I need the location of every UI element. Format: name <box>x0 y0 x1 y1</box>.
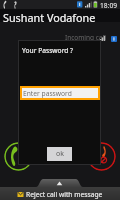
staticText: Enter password <box>23 89 72 98</box>
staticText: Your Password ? <box>22 46 74 55</box>
staticText: Reject call with message <box>26 190 103 199</box>
button[interactable]: Answer call <box>4 142 33 171</box>
staticText: 18:09 <box>100 1 118 10</box>
button[interactable]: Decline call <box>87 142 116 171</box>
staticText: Incoming call <box>65 33 106 42</box>
button[interactable]: Enter password <box>20 86 100 100</box>
staticText: Sushant Vodafone <box>3 10 96 23</box>
staticText: ok <box>56 149 64 159</box>
button[interactable]: ok <box>47 147 72 161</box>
